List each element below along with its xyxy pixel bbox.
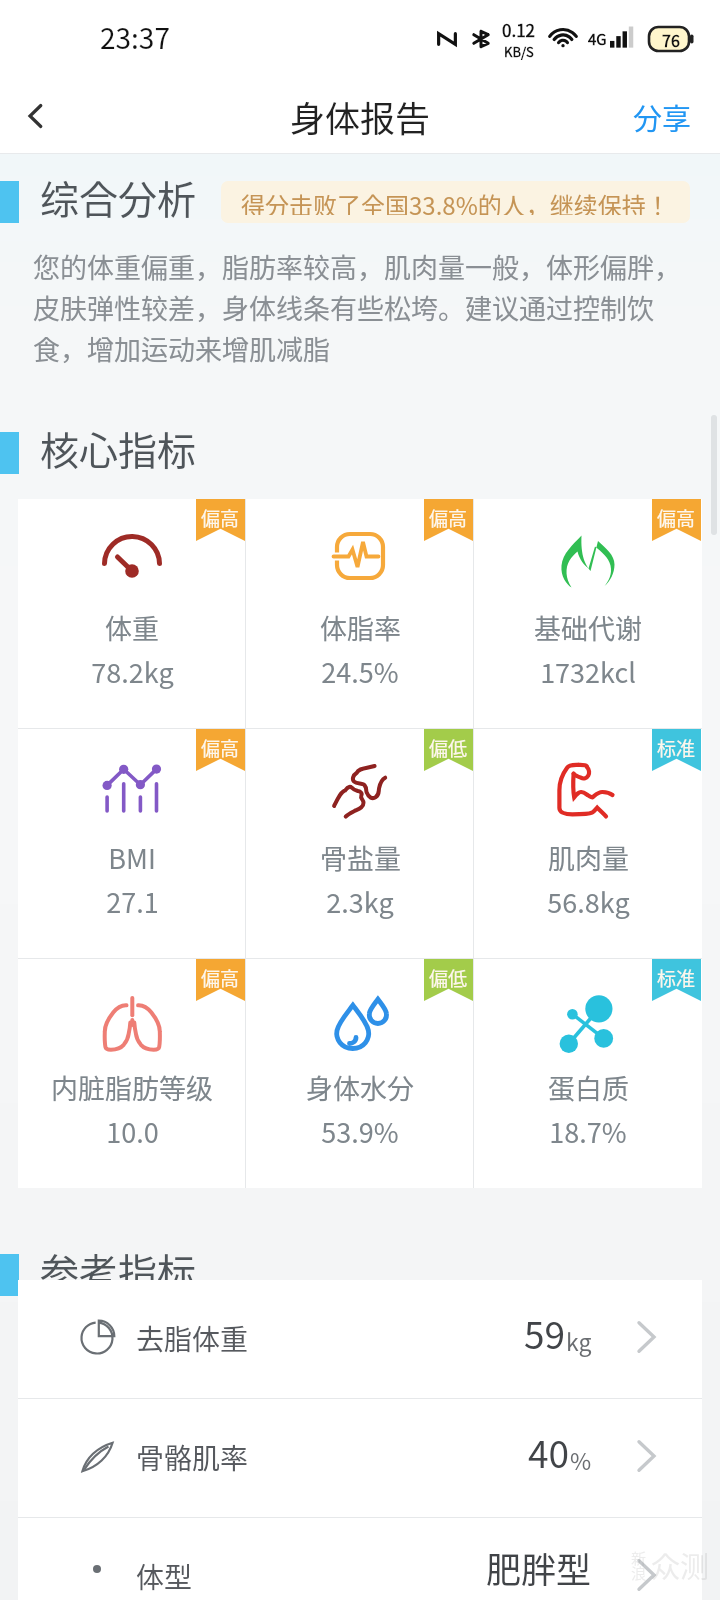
staticText: 新 浪 (631, 1547, 647, 1583)
button[interactable]: 体脂率 (246, 499, 474, 728)
staticText: 身体水分 (306, 1068, 414, 1107)
staticText: 76 (662, 28, 680, 51)
button[interactable]: 骨盐量 (246, 729, 474, 958)
staticText: 您的体重偏重，脂肪率较高，肌肉量一般，体形偏胖， 皮肤弹性较差，身体线条有些松垮… (33, 247, 681, 368)
staticText: 偏高 (201, 964, 240, 992)
button[interactable]: 基础代谢 (474, 499, 702, 728)
staticText: 53.9% (321, 1112, 399, 1151)
staticText: 内脏脂肪等级 (51, 1068, 213, 1107)
staticText: 体型 (136, 1556, 193, 1597)
button[interactable]: 蛋白质 (474, 959, 702, 1188)
staticText: 基础代谢 (534, 608, 642, 647)
staticText: 标准 (657, 964, 696, 992)
staticText: 78.2kg (91, 652, 174, 691)
staticText: 去脂体重 (136, 1318, 249, 1359)
staticText: kg (566, 1324, 592, 1357)
staticText: 27.1 (106, 882, 159, 921)
staticText: 得分击败了全国33.8%的人，继续保持！ (241, 187, 670, 215)
staticText: 2.3kg (326, 882, 394, 921)
staticText: BMI (108, 838, 156, 877)
staticText: 偏高 (201, 504, 240, 532)
staticText: 核心指标 (40, 420, 197, 476)
staticText: 骨骼肌率 (136, 1437, 249, 1478)
staticText: 24.5% (321, 652, 399, 691)
staticText: 体脂率 (320, 608, 401, 647)
staticText: 40 (528, 1425, 570, 1479)
staticText: 59 (524, 1306, 566, 1360)
staticText: 众测 (651, 1544, 710, 1586)
staticText: 偏高 (429, 504, 468, 532)
button[interactable]: 肌肉量 (474, 729, 702, 958)
staticText: 0.12 (502, 17, 536, 42)
staticText: 身体报告 (290, 91, 431, 142)
button[interactable]: 内脏脂肪等级 (18, 959, 246, 1188)
staticText: 蛋白质 (548, 1068, 629, 1107)
button[interactable]: 身体水分 (246, 959, 474, 1188)
staticText: 肥胖型 (486, 1542, 592, 1593)
staticText: 骨盐量 (320, 838, 401, 877)
button[interactable]: Back (0, 80, 72, 152)
staticText: 18.7% (549, 1112, 627, 1151)
button[interactable]: 去脂体重 (18, 1280, 702, 1398)
staticText: 肌肉量 (548, 838, 629, 877)
staticText: 偏低 (429, 964, 468, 992)
staticText: 偏高 (657, 504, 696, 532)
staticText: 偏低 (429, 734, 468, 762)
staticText: 4G (588, 28, 607, 50)
staticText: 1732kcl (540, 652, 636, 691)
staticText: KB/S (504, 42, 534, 61)
staticText: 体重 (105, 608, 159, 647)
staticText: 10.0 (106, 1112, 159, 1151)
button[interactable]: 分享 (605, 78, 720, 154)
staticText: 56.8kg (547, 882, 630, 921)
staticText: 标准 (657, 734, 696, 762)
staticText: 分享 (633, 96, 692, 136)
button[interactable]: 体型 (18, 1518, 702, 1600)
staticText: 偏高 (201, 734, 240, 762)
staticText: 23:37 (100, 17, 170, 58)
button[interactable]: BMI (18, 729, 246, 958)
staticText: % (570, 1443, 592, 1476)
button[interactable]: 骨骼肌率 (18, 1399, 702, 1517)
staticText: 综合分析 (40, 169, 197, 225)
staticText: 参考指标 (40, 1242, 197, 1298)
button[interactable]: 体重 (18, 499, 246, 728)
